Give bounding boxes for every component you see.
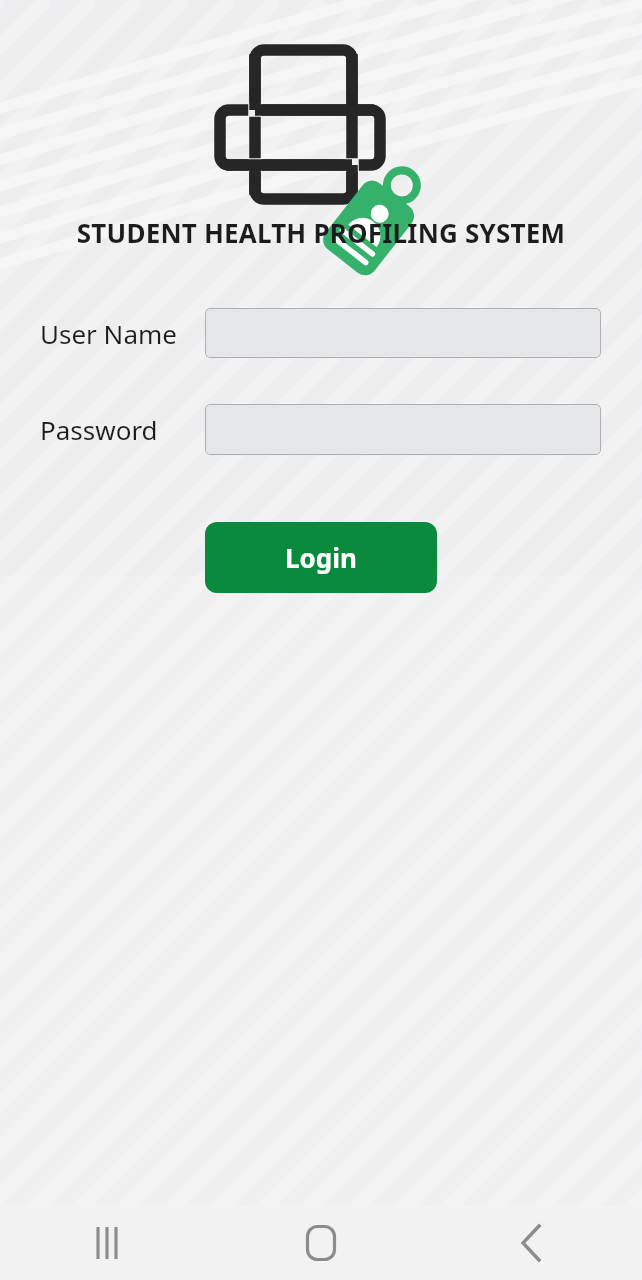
button[interactable]: Back [428,1205,642,1280]
button[interactable]: User Name [205,308,601,358]
staticText: User Name [40,316,177,351]
button[interactable]: Recent apps [0,1205,214,1280]
staticText: Login [285,540,357,575]
button[interactable]: Password [205,404,601,455]
staticText: Password [40,412,158,447]
staticText: STUDENT HEALTH PROFILING SYSTEM [10,215,632,250]
button[interactable]: Login [205,522,437,593]
button[interactable]: Home [214,1205,428,1280]
